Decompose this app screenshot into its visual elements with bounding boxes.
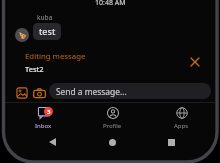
button[interactable]: Attach image [16,87,28,99]
staticText: Editing message [25,51,86,62]
staticText: Apps [174,122,189,130]
staticText: Profile [103,122,122,130]
staticText: Send a message... [56,86,127,97]
button[interactable]: Cancel editing [187,54,203,70]
button[interactable]: Back [43,133,61,151]
button[interactable]: Home [103,133,121,151]
staticText: 10:48 AM [95,0,126,8]
staticText: Test2 [25,64,44,74]
button[interactable]: 3 [9,103,78,132]
button[interactable]: Camera [33,87,46,100]
button[interactable]: Profile [78,103,147,132]
button[interactable]: test [33,23,61,40]
staticText: Inbox [35,122,52,130]
button[interactable]: Recents [162,133,180,151]
staticText: test [39,25,56,38]
staticText: kuba [37,13,53,22]
staticText: 3 [47,108,51,116]
button[interactable]: kuba avatar [15,28,29,42]
button[interactable]: Apps [147,103,216,132]
button[interactable]: Send a message... [49,83,211,99]
